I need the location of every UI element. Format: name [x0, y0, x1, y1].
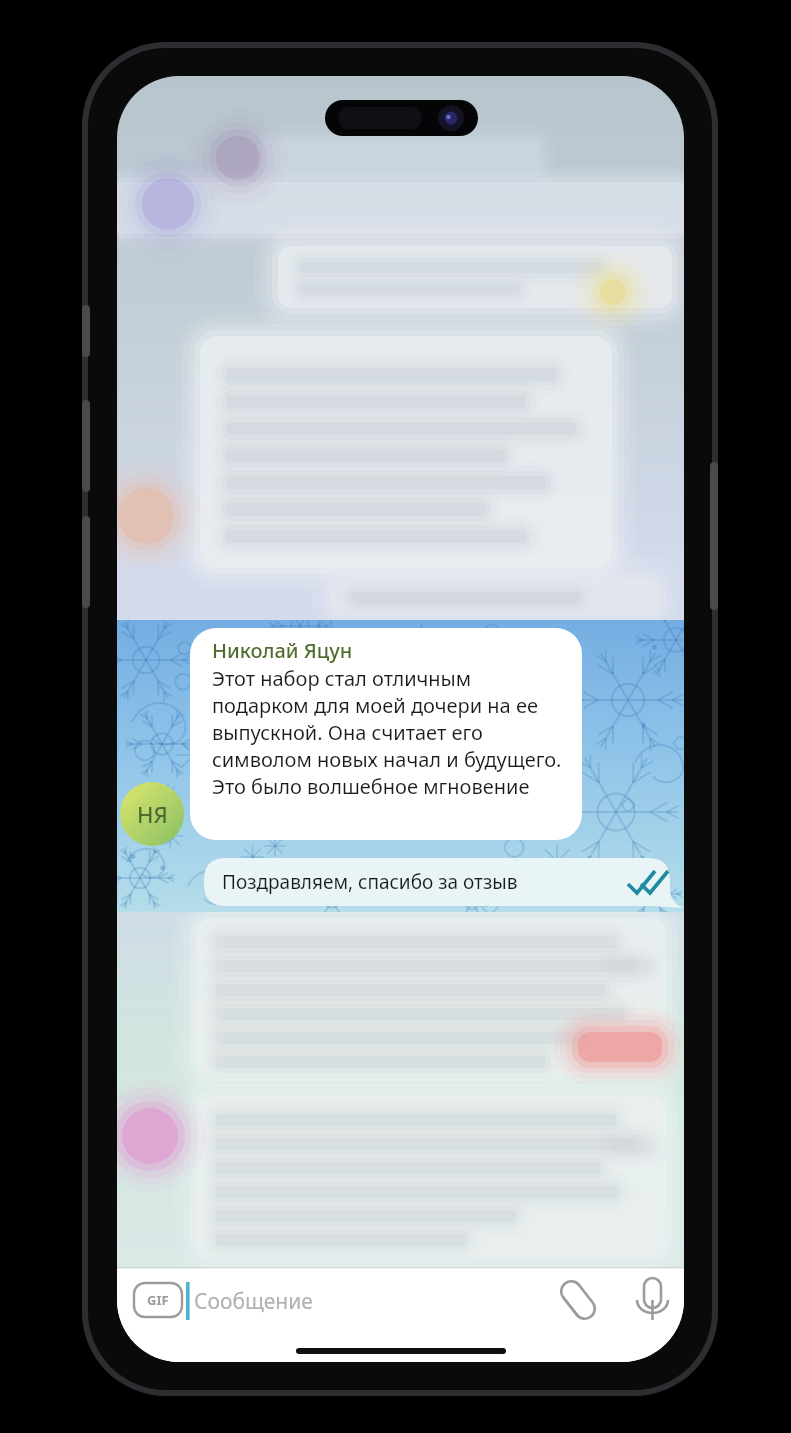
button[interactable]: GIF — [134, 1283, 182, 1317]
staticText: Этот набор стал отличным подарком для мо… — [212, 665, 570, 800]
staticText: НЯ — [137, 799, 168, 829]
staticText: Поздравляем, спасибо за отзыв — [222, 869, 518, 895]
button[interactable]: Николай Яцун — [212, 637, 570, 800]
button[interactable]: Николай Яцун avatar — [120, 782, 184, 846]
button[interactable]: Record voice message — [630, 1276, 678, 1324]
button[interactable]: Attach file — [554, 1276, 602, 1324]
button[interactable]: Сообщение — [194, 1280, 524, 1322]
button[interactable]: Поздравляем, спасибо за отзыв — [204, 858, 672, 906]
staticText: Николай Яцун — [212, 637, 353, 664]
staticText: Сообщение — [194, 1287, 313, 1316]
staticText: GIF — [147, 1291, 169, 1309]
